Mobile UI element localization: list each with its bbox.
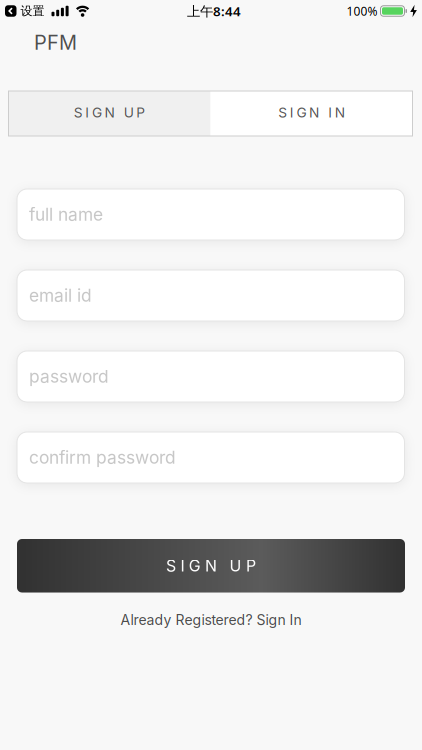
staticText: 100% — [346, 3, 377, 19]
button[interactable]: SIGN UP — [8, 91, 210, 136]
staticText: full name — [29, 204, 103, 225]
button[interactable]: SIGN IN — [210, 91, 412, 136]
staticText: confirm password — [29, 447, 176, 468]
staticText: 设置 — [20, 4, 44, 18]
staticText: SIGN UP — [74, 104, 145, 121]
staticText: PFM — [34, 30, 77, 55]
staticText: 上午8:44 — [187, 2, 241, 20]
staticText: email id — [29, 285, 92, 306]
staticText: password — [29, 366, 109, 387]
button[interactable]: Already Registered? Sign In — [120, 611, 301, 628]
staticText: Already Registered? Sign In — [120, 611, 301, 628]
staticText: SIGN IN — [278, 104, 345, 121]
staticText: SIGN UP — [166, 556, 256, 575]
button[interactable]: 返回设置 — [5, 4, 44, 18]
button[interactable]: SIGN UP — [17, 539, 405, 592]
